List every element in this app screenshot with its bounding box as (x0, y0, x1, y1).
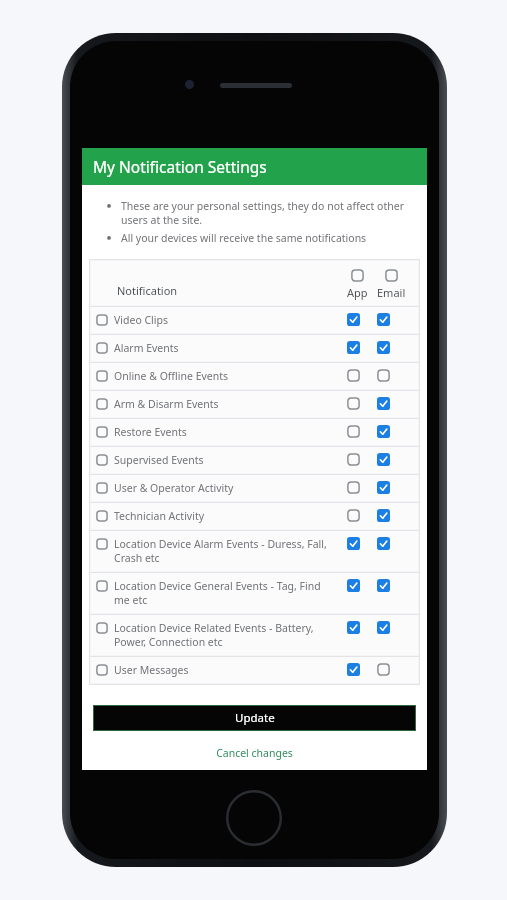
staticText: Supervised Events (114, 453, 204, 467)
button[interactable]: Location Device General Events - Tag, Fi… (89, 573, 420, 615)
button[interactable]: Location Device Related Events - Battery… (89, 615, 420, 657)
button[interactable]: Cancel changes (82, 746, 427, 760)
staticText: Cancel changes (216, 746, 293, 760)
staticText: App (347, 285, 368, 300)
staticText: User Messages (114, 663, 189, 677)
button[interactable]: Online & Offline Events (89, 363, 420, 391)
button[interactable]: Restore Events (89, 419, 420, 447)
staticText: Online & Offline Events (114, 369, 229, 383)
button[interactable]: Technician Activity (89, 503, 420, 531)
staticText: Notification (117, 283, 178, 298)
staticText: Alarm Events (114, 341, 179, 355)
staticText: Location Device General Events - Tag, Fi… (114, 579, 339, 607)
button[interactable]: Toggle all App (351, 269, 364, 282)
button[interactable]: User Messages (89, 657, 420, 685)
button[interactable]: Toggle all Email (385, 269, 398, 282)
staticText: Restore Events (114, 425, 187, 439)
button[interactable]: Alarm Events (89, 335, 420, 363)
staticText: Update (235, 710, 275, 726)
button[interactable]: Location Device Alarm Events - Duress, F… (89, 531, 420, 573)
button[interactable]: User & Operator Activity (89, 475, 420, 503)
staticText: My Notification Settings (93, 156, 267, 177)
staticText: Email (377, 285, 406, 300)
button[interactable]: Supervised Events (89, 447, 420, 475)
staticText: User & Operator Activity (114, 481, 234, 495)
staticText: Arm & Disarm Events (114, 397, 219, 411)
button[interactable]: My Notification Settings (82, 148, 427, 185)
button[interactable]: Update (94, 706, 415, 730)
staticText: Location Device Alarm Events - Duress, F… (114, 537, 339, 565)
staticText: These are your personal settings, they d… (121, 199, 413, 227)
staticText: Location Device Related Events - Battery… (114, 621, 339, 649)
staticText: Video Clips (114, 313, 169, 327)
staticText: All your devices will receive the same n… (121, 231, 367, 245)
staticText: Technician Activity (114, 509, 205, 523)
button[interactable]: Video Clips (89, 307, 420, 335)
button[interactable]: Arm & Disarm Events (89, 391, 420, 419)
